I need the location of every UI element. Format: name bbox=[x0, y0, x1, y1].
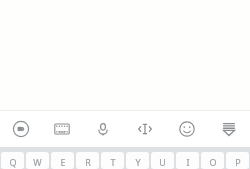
button[interactable]: U bbox=[151, 152, 174, 169]
staticText: T bbox=[110, 156, 116, 168]
button[interactable]: Emoji bbox=[166, 111, 208, 147]
button[interactable]: P bbox=[226, 152, 249, 169]
button[interactable]: Google Assistant bbox=[0, 111, 41, 147]
button[interactable]: Hide keyboard bbox=[208, 111, 250, 147]
button[interactable]: E bbox=[51, 152, 74, 169]
staticText: Y bbox=[135, 156, 141, 168]
button[interactable]: R bbox=[76, 152, 99, 169]
button[interactable]: T bbox=[101, 152, 124, 169]
staticText: E bbox=[60, 156, 66, 168]
staticText: W bbox=[33, 156, 42, 168]
button[interactable]: W bbox=[26, 152, 49, 169]
button[interactable]: Keyboard layout bbox=[41, 111, 82, 147]
staticText: R bbox=[85, 156, 91, 168]
staticText: U bbox=[159, 156, 166, 168]
button[interactable]: I bbox=[176, 152, 199, 169]
button[interactable]: Y bbox=[126, 152, 149, 169]
button[interactable]: Q bbox=[1, 152, 24, 169]
staticText: O bbox=[209, 156, 217, 168]
staticText: P bbox=[235, 156, 241, 168]
button[interactable]: Voice input bbox=[82, 111, 124, 147]
staticText: I bbox=[186, 156, 190, 168]
button[interactable]: O bbox=[201, 152, 224, 169]
staticText: Q bbox=[9, 156, 17, 168]
button[interactable]: Text editing bbox=[124, 111, 166, 147]
